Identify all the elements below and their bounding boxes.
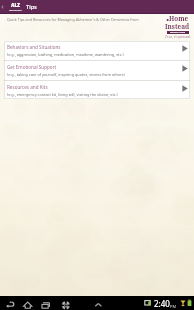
- button[interactable]: Expand: [94, 296, 103, 310]
- staticText: Home: [169, 14, 189, 23]
- staticText: (e.g., taking care of yourself, inspirin…: [7, 72, 125, 77]
- staticText: ASSOCIATION: [9, 9, 22, 12]
- button[interactable]: Screenshot: [61, 296, 72, 310]
- button[interactable]: Back: [5, 296, 16, 310]
- staticText: Quick Tips and Resources for Managing Al…: [7, 17, 139, 22]
- button[interactable]: Get Emotional Support: [4, 61, 190, 80]
- staticText: Resources and Kits: [7, 84, 48, 90]
- staticText: Behaviors and Situations: [7, 44, 61, 50]
- staticText: PM: [170, 304, 177, 309]
- staticText: (e.g., emergency contact kit, living wil…: [7, 92, 118, 97]
- staticText: 2:40: [154, 298, 170, 309]
- staticText: Get Emotional Support: [7, 64, 57, 70]
- staticText: (e.g., aggression, bathing, medication, …: [7, 52, 124, 57]
- staticText: Instead: [165, 22, 190, 31]
- button[interactable]: Navigate up: [0, 0, 6, 14]
- button[interactable]: Resources and Kits: [4, 81, 190, 99]
- button[interactable]: Behaviors and Situations: [4, 41, 190, 60]
- staticText: To us, it's personal.: [165, 35, 191, 39]
- staticText: SENIOR CARE: [170, 31, 186, 34]
- staticText: Tips: [26, 3, 37, 11]
- button[interactable]: Home: [23, 296, 34, 310]
- button[interactable]: Recents: [41, 296, 52, 310]
- staticText: ALZ: [11, 2, 20, 9]
